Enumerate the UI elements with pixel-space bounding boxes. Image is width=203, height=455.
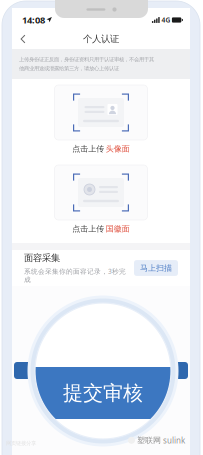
staticText: 他商业用途或泄露给第三方，请放心上传认证 [19, 65, 119, 72]
button[interactable]: 提交审核 [14, 362, 188, 379]
staticText: 4G [161, 16, 170, 24]
staticText: 塑联网 [137, 435, 161, 445]
button[interactable]: 提交审核 [8, 367, 198, 419]
staticText: 个人认证 [83, 33, 119, 45]
staticText: 国徽面 [106, 224, 130, 234]
staticText: 头像面 [106, 144, 130, 154]
staticText: 网页链接分享 [6, 440, 36, 447]
staticText: 提交审核 [83, 365, 119, 376]
staticText: 14:08 [22, 14, 45, 26]
staticText: 面容采集 [24, 252, 60, 264]
staticText: 系统会采集你的面容记录，3秒完成 [24, 267, 126, 284]
staticText: 马上扫描 [140, 263, 172, 273]
staticText: 上传身份证正反面，身份证资料只用于认证审核，不会用于其 [19, 56, 154, 63]
button[interactable]: 马上扫描 [134, 260, 178, 276]
staticText: 点击上传 [72, 224, 104, 234]
button[interactable]: Back [12, 29, 34, 49]
button[interactable]: 点击上传 [12, 165, 190, 234]
staticText: 点击上传 [72, 144, 104, 154]
staticText: 提交审核 [63, 381, 143, 405]
staticText: sulink [163, 435, 185, 446]
button[interactable]: 点击上传 [12, 85, 190, 154]
